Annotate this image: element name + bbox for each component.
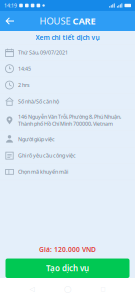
staticText: ◯ xyxy=(64,285,71,293)
button[interactable]: Ghi rõ yêu cầu công việc xyxy=(0,147,135,164)
staticText: Tạo dịch vụ xyxy=(46,263,89,273)
staticText: 14:45 xyxy=(18,65,31,72)
staticText: Ghi rõ yêu cầu công việc xyxy=(18,152,76,159)
staticText: 146 Nguyễn Văn Trỗi, Phường 8, Phú Nhuận… xyxy=(18,113,121,127)
staticText: Người giúp việc xyxy=(18,136,55,143)
staticText: Chọn mã khuyến mãi xyxy=(18,168,68,175)
button[interactable]: 146 Nguyễn Văn Trỗi, Phường 8, Phú Nhuận… xyxy=(0,110,135,131)
button[interactable]: Số nhà/Số căn hộ xyxy=(0,93,135,110)
button[interactable]: Người giúp việc xyxy=(0,131,135,147)
staticText: 2 hrs xyxy=(18,81,30,89)
button[interactable]: Xem chi tiết dịch vụ xyxy=(0,31,135,44)
staticText: Số nhà/Số căn hộ xyxy=(18,98,59,105)
staticText: ◁ xyxy=(29,285,34,293)
staticText: Xem chi tiết dịch vụ xyxy=(35,33,99,42)
button[interactable]: Back xyxy=(0,11,20,31)
staticText: Thứ Sáu, 09/07/2021 xyxy=(18,49,68,56)
staticText: CARE xyxy=(72,15,95,27)
staticText: HOUSE xyxy=(39,15,70,27)
button[interactable]: Chọn mã khuyến mãi xyxy=(0,164,135,180)
staticText: Giá: 120.000 VND xyxy=(39,245,96,254)
button[interactable]: 14:45 xyxy=(0,61,135,77)
button[interactable]: Thứ Sáu, 09/07/2021 xyxy=(0,44,135,61)
staticText: □ xyxy=(100,286,105,292)
button[interactable]: 2 hrs xyxy=(0,77,135,93)
button[interactable]: Tạo dịch vụ xyxy=(5,258,129,278)
staticText: 14:19 xyxy=(4,2,17,9)
